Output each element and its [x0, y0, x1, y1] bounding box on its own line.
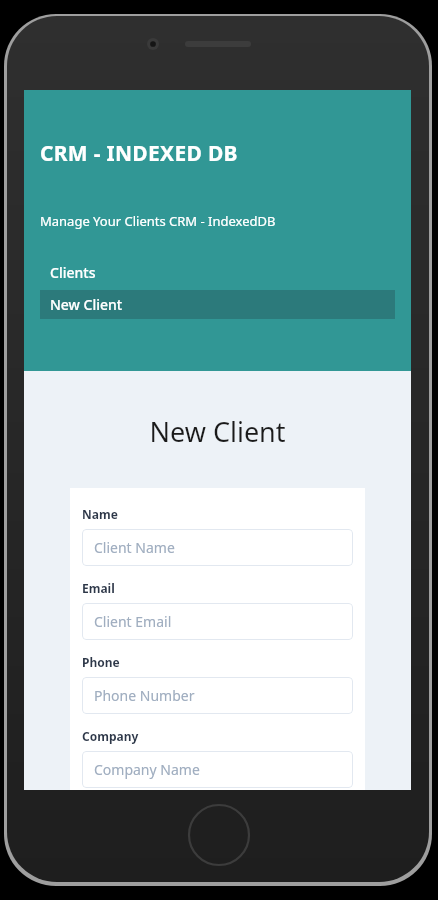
- button[interactable]: Company Name: [82, 751, 353, 788]
- staticText: Name: [82, 506, 118, 522]
- staticText: Clients: [50, 263, 96, 282]
- button[interactable]: New Client: [40, 290, 395, 319]
- staticText: New Client: [50, 295, 123, 314]
- button[interactable]: Clients: [24, 258, 411, 287]
- staticText: Company Name: [94, 760, 200, 779]
- staticText: Company: [82, 728, 139, 744]
- button[interactable]: Home: [188, 804, 250, 866]
- button[interactable]: Phone Number: [82, 677, 353, 714]
- staticText: CRM - INDEXED DB: [40, 139, 238, 168]
- staticText: New Client: [24, 413, 411, 450]
- staticText: Client Email: [94, 612, 172, 631]
- button[interactable]: Client Email: [82, 603, 353, 640]
- staticText: Email: [82, 580, 115, 596]
- button[interactable]: Client Name: [82, 529, 353, 566]
- staticText: Manage Your Clients CRM - IndexedDB: [40, 212, 276, 230]
- staticText: Client Name: [94, 538, 175, 557]
- staticText: Phone Number: [94, 686, 195, 705]
- staticText: Phone: [82, 654, 120, 670]
